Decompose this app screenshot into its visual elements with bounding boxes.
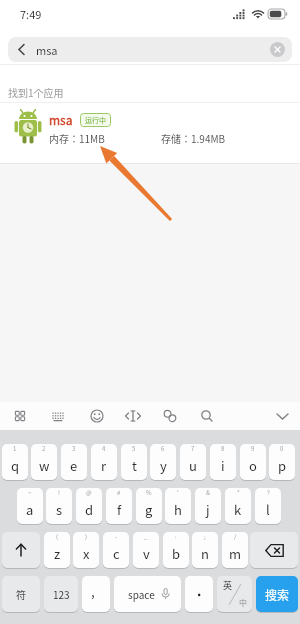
- button[interactable]: 8: [210, 444, 236, 480]
- staticText: m: [229, 544, 242, 563]
- staticText: q: [11, 456, 20, 475]
- button[interactable]: 1: [2, 444, 28, 480]
- button[interactable]: :: [163, 532, 189, 568]
- button[interactable]: 7: [180, 444, 206, 480]
- staticText: -: [115, 532, 118, 541]
- staticText: ': [177, 488, 179, 497]
- staticText: j: [206, 500, 210, 519]
- button[interactable]: [2, 532, 40, 568]
- staticText: k: [234, 500, 242, 519]
- staticText: n: [201, 544, 209, 563]
- staticText: msa: [36, 42, 58, 58]
- staticText: 2: [42, 444, 46, 453]
- staticText: 0: [280, 444, 284, 453]
- button[interactable]: ': [165, 488, 191, 524]
- staticText: 内存：11MB: [49, 131, 105, 145]
- button[interactable]: %: [136, 488, 162, 524]
- staticText: !: [58, 488, 60, 497]
- staticText: _: [144, 532, 148, 541]
- button[interactable]: 0: [269, 444, 295, 480]
- button[interactable]: 2: [31, 444, 57, 480]
- button[interactable]: /: [222, 532, 248, 568]
- staticText: *: [237, 488, 240, 497]
- staticText: #: [117, 488, 121, 497]
- button[interactable]: ): [73, 532, 99, 568]
- staticText: /: [234, 532, 237, 541]
- staticText: space: [128, 587, 155, 601]
- button[interactable]: [250, 532, 298, 568]
- button[interactable]: 6: [150, 444, 176, 480]
- button[interactable]: ;: [192, 532, 218, 568]
- staticText: i: [221, 456, 225, 475]
- button[interactable]: [270, 42, 285, 57]
- staticText: g: [145, 500, 153, 519]
- staticText: :: [175, 532, 177, 541]
- staticText: x: [83, 544, 90, 563]
- staticText: t: [132, 456, 137, 475]
- button[interactable]: *: [225, 488, 251, 524]
- staticText: u: [189, 456, 197, 475]
- staticText: 中: [239, 597, 247, 609]
- staticText: 7:49: [20, 6, 42, 22]
- button[interactable]: 9: [240, 444, 266, 480]
- staticText: 3: [72, 444, 76, 453]
- staticText: 9: [251, 444, 255, 453]
- staticText: 存储：1.94MB: [161, 131, 226, 145]
- staticText: 英: [223, 579, 233, 592]
- staticText: z: [54, 544, 61, 563]
- button[interactable]: ?: [255, 488, 281, 524]
- staticText: ·: [195, 583, 204, 605]
- staticText: ;: [204, 532, 206, 541]
- button[interactable]: &: [195, 488, 221, 524]
- button[interactable]: 英: [217, 576, 252, 612]
- staticText: e: [70, 456, 78, 475]
- button[interactable]: -: [103, 532, 129, 568]
- staticText: %: [146, 488, 152, 497]
- staticText: r: [101, 456, 107, 475]
- staticText: b: [172, 544, 181, 563]
- staticText: s: [56, 500, 63, 519]
- staticText: l: [266, 500, 270, 519]
- staticText: (: [56, 532, 59, 541]
- button[interactable]: msa: [8, 37, 292, 62]
- staticText: y: [160, 456, 167, 475]
- button[interactable]: ~: [17, 488, 43, 524]
- staticText: 找到1个应用: [8, 85, 64, 99]
- staticText: 1: [13, 444, 17, 453]
- staticText: ?: [267, 488, 270, 497]
- button[interactable]: @: [76, 488, 102, 524]
- button[interactable]: !: [46, 488, 72, 524]
- staticText: a: [26, 500, 34, 519]
- staticText: 8: [221, 444, 225, 453]
- staticText: msa: [49, 111, 73, 128]
- staticText: 123: [53, 587, 70, 601]
- staticText: &: [206, 488, 211, 497]
- staticText: o: [249, 456, 257, 475]
- staticText: d: [85, 500, 94, 519]
- staticText: 运行中: [85, 115, 106, 125]
- staticText: 4: [102, 444, 106, 453]
- button[interactable]: (: [44, 532, 70, 568]
- staticText: 7: [191, 444, 195, 453]
- button[interactable]: space: [114, 576, 181, 612]
- staticText: ，: [90, 584, 103, 601]
- button[interactable]: ·: [185, 576, 213, 612]
- button[interactable]: 4: [91, 444, 117, 480]
- staticText: 搜索: [265, 586, 290, 603]
- staticText: p: [278, 456, 287, 475]
- button[interactable]: #: [106, 488, 132, 524]
- staticText: w: [39, 456, 50, 475]
- staticText: h: [174, 500, 182, 519]
- button[interactable]: 3: [61, 444, 87, 480]
- staticText: ): [85, 532, 88, 541]
- button[interactable]: 搜索: [256, 576, 298, 612]
- staticText: ~: [28, 488, 32, 497]
- button[interactable]: _: [133, 532, 159, 568]
- button[interactable]: 123: [44, 576, 78, 612]
- button[interactable]: 5: [121, 444, 147, 480]
- staticText: 6: [161, 444, 165, 453]
- staticText: c: [113, 544, 120, 563]
- button[interactable]: 符: [2, 576, 40, 612]
- staticText: v: [143, 544, 150, 563]
- button[interactable]: ，: [82, 576, 110, 612]
